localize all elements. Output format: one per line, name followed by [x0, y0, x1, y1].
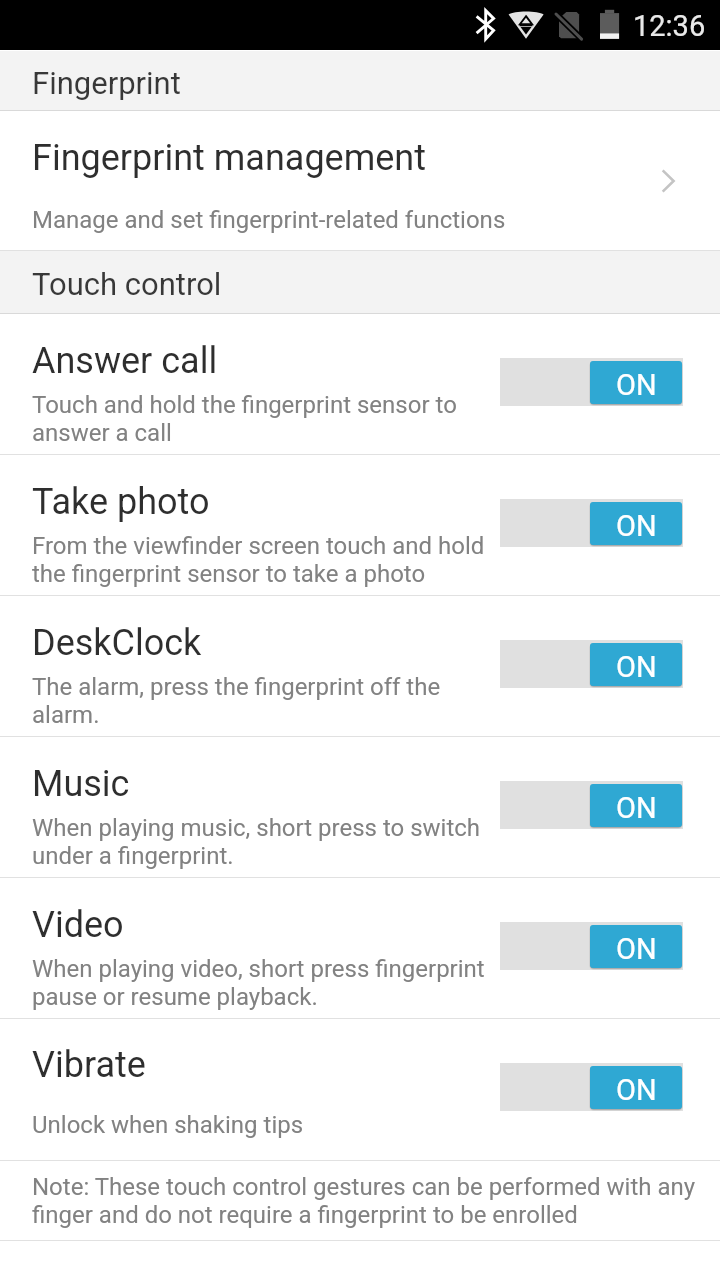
staticText: When playing music, short press to switc…: [32, 814, 490, 870]
button[interactable]: Vibrate: [0, 1019, 720, 1160]
staticText: DeskClock: [32, 622, 490, 664]
staticText: Fingerprint management: [32, 137, 640, 179]
staticText: Take photo: [32, 481, 490, 523]
staticText: ON: [616, 368, 657, 402]
staticText: Video: [32, 904, 490, 946]
staticText: Manage and set fingerprint-related funct…: [32, 206, 640, 234]
button[interactable]: Toggle, on: [500, 640, 683, 688]
staticText: ON: [616, 791, 657, 825]
button[interactable]: Music: [0, 737, 720, 877]
button[interactable]: Video: [0, 878, 720, 1018]
button[interactable]: Toggle, on: [500, 499, 683, 547]
staticText: Touch and hold the fingerprint sensor to…: [32, 391, 490, 447]
staticText: Fingerprint: [32, 65, 181, 101]
button[interactable]: DeskClock: [0, 596, 720, 736]
staticText: ON: [616, 1073, 657, 1107]
button[interactable]: Answer call: [0, 314, 720, 454]
staticText: When playing video, short press fingerpr…: [32, 955, 490, 1011]
staticText: Unlock when shaking tips: [32, 1111, 490, 1139]
staticText: ON: [616, 509, 657, 543]
button[interactable]: Toggle, on: [500, 781, 683, 829]
staticText: Note: These touch control gestures can b…: [32, 1173, 706, 1229]
staticText: ON: [616, 932, 657, 966]
staticText: From the viewfinder screen touch and hol…: [32, 532, 490, 588]
staticText: ON: [616, 650, 657, 684]
staticText: The alarm, press the fingerprint off the…: [32, 673, 490, 729]
staticText: 12:36: [633, 9, 706, 43]
staticText: Vibrate: [32, 1044, 490, 1086]
staticText: Music: [32, 763, 490, 805]
button[interactable]: Toggle, on: [500, 358, 683, 406]
button[interactable]: Toggle, on: [500, 1063, 683, 1111]
staticText: Touch control: [32, 266, 222, 302]
button[interactable]: Take photo: [0, 455, 720, 595]
staticText: Answer call: [32, 340, 490, 382]
button[interactable]: Toggle, on: [500, 922, 683, 970]
button[interactable]: Fingerprint management: [0, 111, 720, 250]
button[interactable]: Open fingerprint management: [0, 111, 720, 250]
